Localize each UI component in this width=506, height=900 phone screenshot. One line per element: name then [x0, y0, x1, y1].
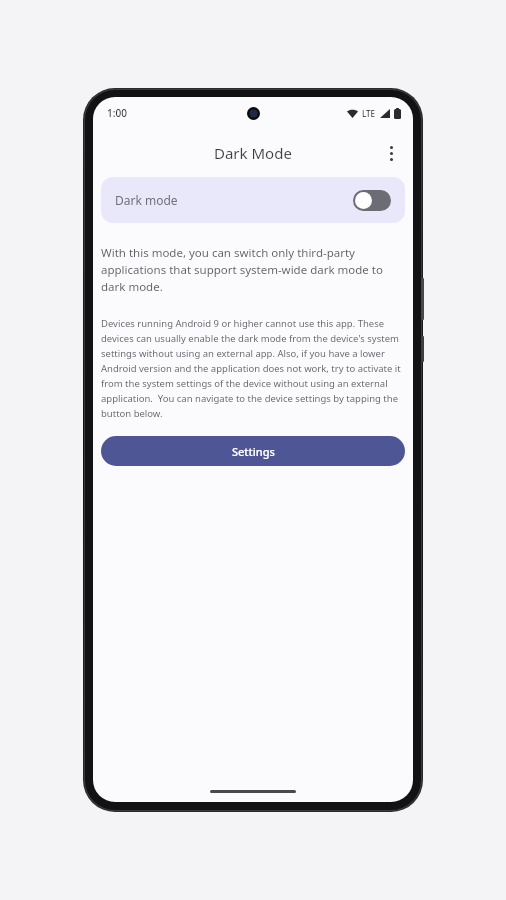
staticText: LTE: [362, 108, 376, 119]
button[interactable]: Settings: [101, 436, 405, 466]
staticText: Dark Mode: [214, 143, 292, 163]
staticText: Devices running Android 9 or higher cann…: [101, 317, 405, 420]
staticText: Dark mode: [115, 192, 178, 208]
staticText: Settings: [232, 444, 275, 459]
staticText: 1:00: [107, 106, 127, 120]
button[interactable]: More options: [373, 135, 409, 171]
button[interactable]: Dark mode: [101, 177, 405, 223]
staticText: With this mode, you can switch only thir…: [101, 245, 405, 295]
